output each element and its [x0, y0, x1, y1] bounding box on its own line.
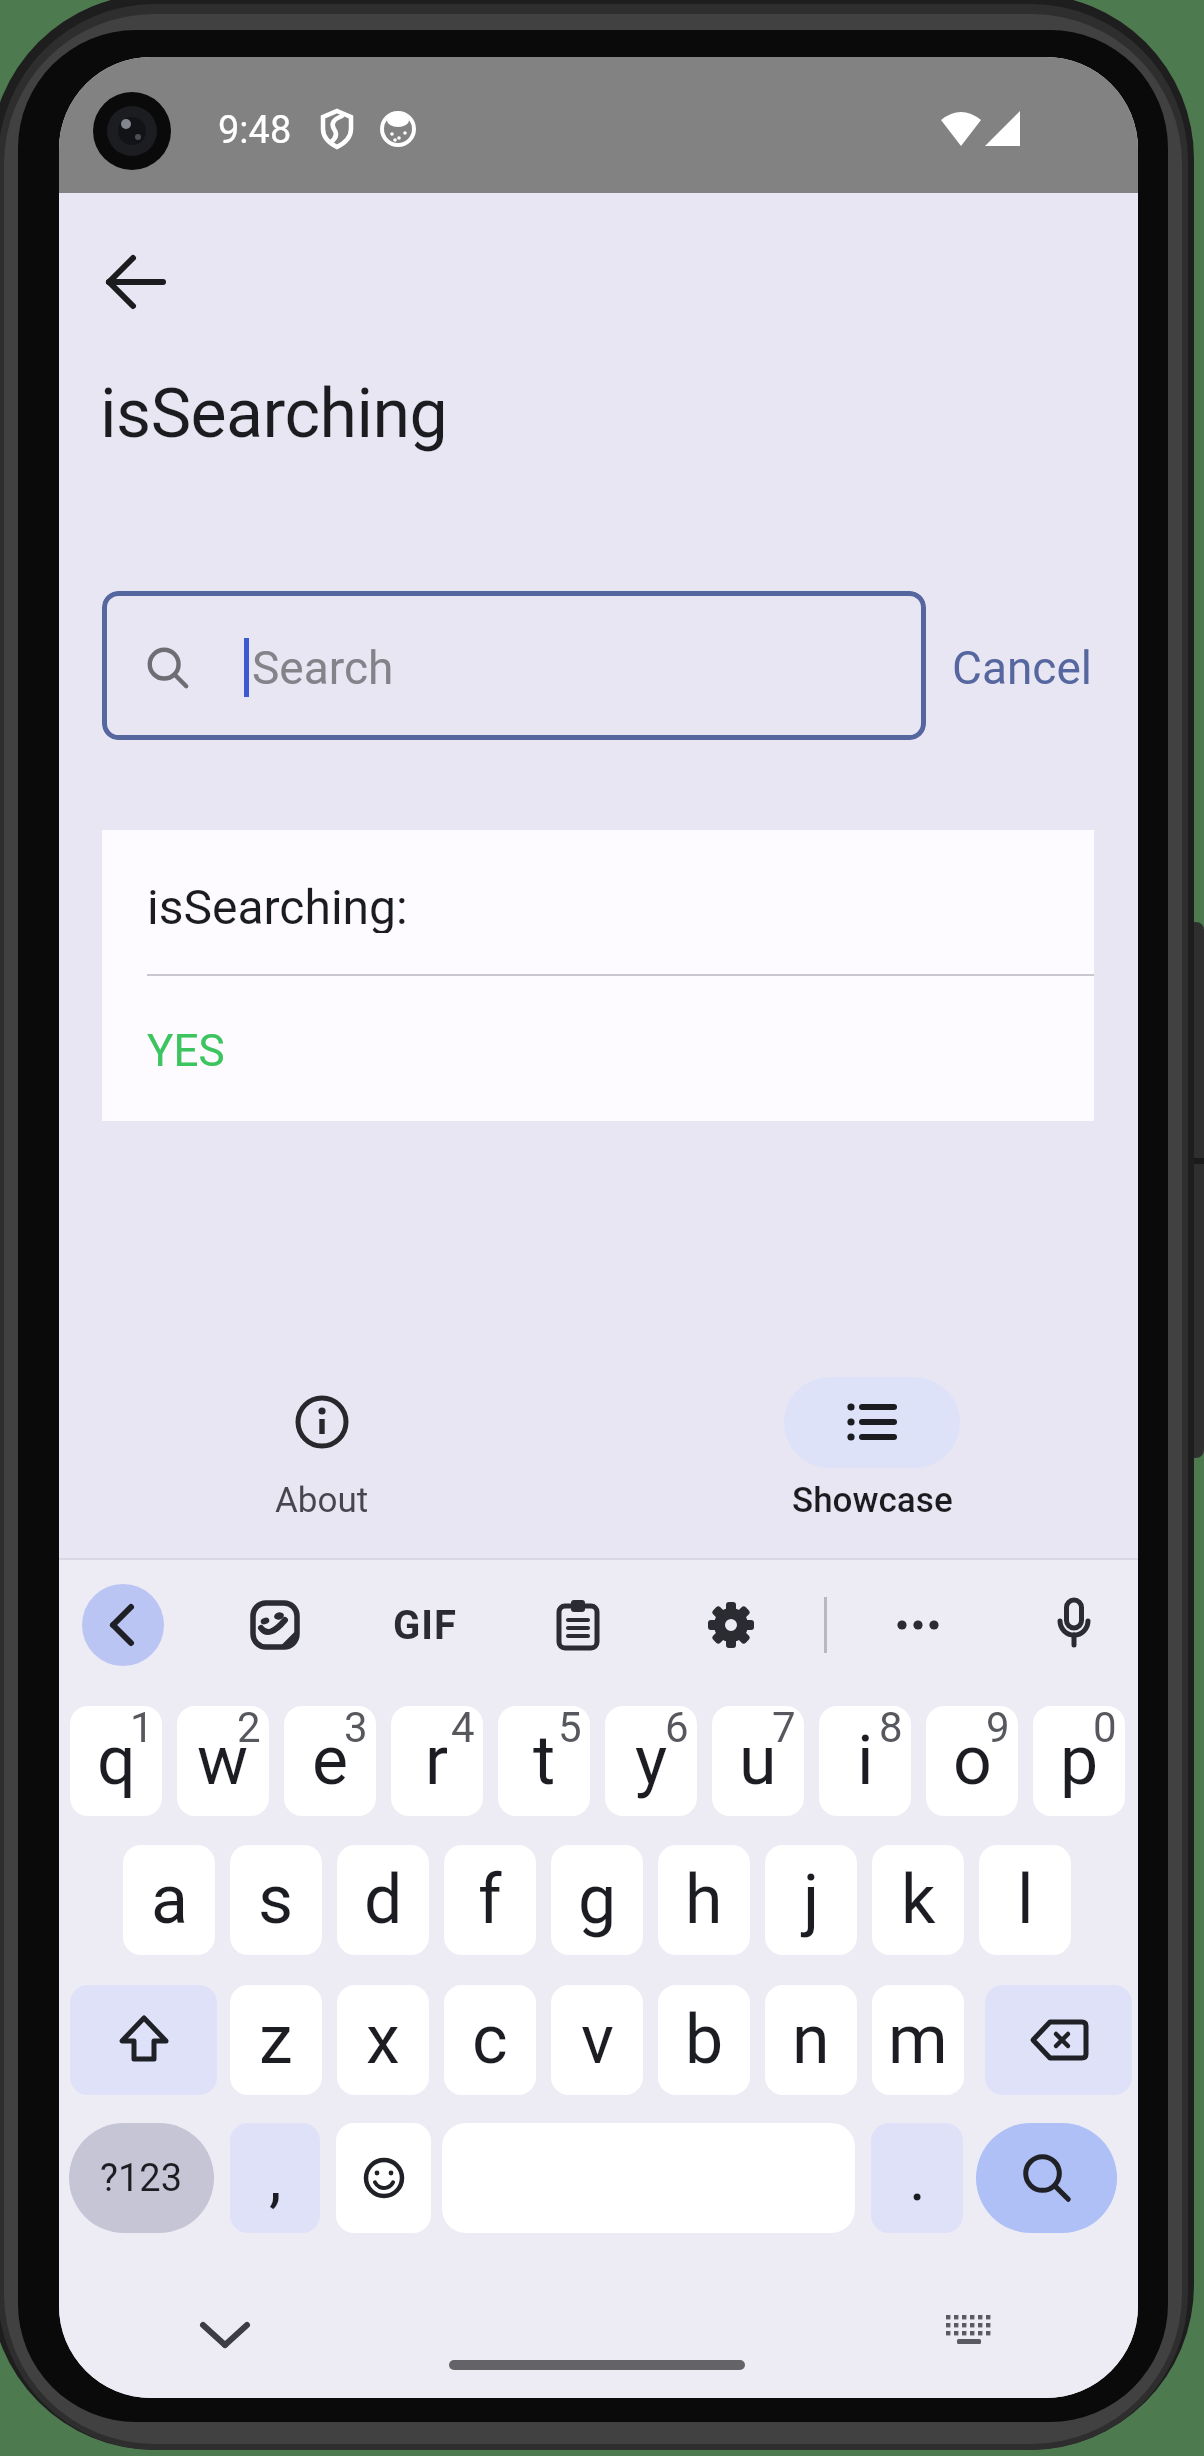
staticText: k	[901, 1860, 936, 1940]
button[interactable]: b	[658, 1985, 750, 2095]
staticText: n	[792, 2000, 830, 2080]
staticText: 4	[451, 1706, 475, 1752]
staticText: j	[803, 1860, 820, 1940]
staticText: 2	[237, 1706, 261, 1752]
staticText: f	[478, 1860, 502, 1940]
staticText: ,	[269, 2141, 282, 2216]
button[interactable]: r	[391, 1706, 483, 1816]
button[interactable]	[222, 1377, 422, 1527]
staticText: l	[1017, 1860, 1034, 1940]
button[interactable]: n	[765, 1985, 857, 2095]
staticText: g	[578, 1860, 617, 1940]
button[interactable]: x	[337, 1985, 429, 2095]
button[interactable]	[336, 2123, 431, 2233]
button[interactable]	[104, 250, 168, 314]
staticText: w	[197, 1721, 249, 1801]
staticText: isSearching	[100, 374, 448, 454]
button[interactable]: i	[819, 1706, 911, 1816]
button[interactable]: c	[444, 1985, 536, 2095]
button[interactable]: a	[123, 1845, 215, 1955]
button[interactable]	[705, 1599, 757, 1651]
staticText: c	[472, 2000, 508, 2080]
button[interactable]: t	[498, 1706, 590, 1816]
button[interactable]: f	[444, 1845, 536, 1955]
staticText: 3	[344, 1706, 368, 1752]
staticText: t	[533, 1721, 556, 1801]
button[interactable]: s	[230, 1845, 322, 1955]
button[interactable]: q	[70, 1706, 162, 1816]
staticText: Showcase	[792, 1480, 953, 1521]
button[interactable]	[250, 1600, 300, 1650]
button[interactable]: d	[337, 1845, 429, 1955]
button[interactable]: g	[551, 1845, 643, 1955]
staticText: 0	[1093, 1706, 1117, 1752]
staticText: i	[857, 1721, 874, 1801]
button[interactable]: .	[871, 2123, 963, 2233]
staticText: ?123	[100, 2156, 183, 2201]
staticText: x	[366, 2000, 400, 2080]
button[interactable]: w	[177, 1706, 269, 1816]
staticText: d	[364, 1860, 403, 1940]
staticText: Search	[252, 641, 394, 695]
button[interactable]: j	[765, 1845, 857, 1955]
button[interactable]	[894, 1615, 942, 1635]
staticText: q	[97, 1721, 136, 1801]
button[interactable]: p	[1033, 1706, 1125, 1816]
button[interactable]: e	[284, 1706, 376, 1816]
staticText: GIF	[393, 1602, 457, 1649]
staticText: 6	[665, 1706, 689, 1752]
button[interactable]: o	[926, 1706, 1018, 1816]
staticText: isSearching:	[147, 879, 408, 933]
button[interactable]: y	[605, 1706, 697, 1816]
button[interactable]	[784, 1377, 960, 1468]
staticText: p	[1060, 1721, 1099, 1801]
button[interactable]: ,	[230, 2123, 320, 2233]
staticText: v	[581, 2000, 614, 2080]
staticText: b	[685, 2000, 724, 2080]
staticText: h	[685, 1860, 723, 1940]
staticText: u	[739, 1721, 777, 1801]
button[interactable]	[102, 591, 926, 740]
staticText: 9:48	[218, 108, 292, 153]
button[interactable]	[70, 1985, 217, 2095]
button[interactable]: l	[979, 1845, 1071, 1955]
staticText: a	[151, 1860, 188, 1940]
button[interactable]: ?123	[69, 2123, 214, 2233]
button[interactable]	[553, 1598, 603, 1652]
staticText: o	[953, 1721, 992, 1801]
button[interactable]	[1048, 1597, 1100, 1653]
staticText: Cancel	[952, 641, 1093, 695]
staticText: 7	[772, 1706, 796, 1752]
button[interactable]	[944, 2313, 996, 2349]
staticText: 5	[558, 1706, 582, 1752]
staticText: .	[909, 2141, 926, 2216]
button[interactable]: u	[712, 1706, 804, 1816]
staticText: About	[275, 1480, 369, 1521]
staticText: s	[258, 1860, 294, 1940]
button[interactable]: h	[658, 1845, 750, 1955]
staticText: 1	[130, 1706, 154, 1752]
button[interactable]: z	[230, 1985, 322, 2095]
staticText: YES	[147, 1025, 225, 1077]
button[interactable]	[976, 2123, 1117, 2233]
button[interactable]	[193, 2311, 257, 2359]
staticText: 8	[879, 1706, 903, 1752]
button[interactable]: k	[872, 1845, 964, 1955]
button[interactable]: v	[551, 1985, 643, 2095]
staticText: y	[635, 1721, 668, 1801]
button[interactable]: GIF	[365, 1600, 485, 1650]
staticText: r	[425, 1721, 449, 1801]
staticText: z	[259, 2000, 293, 2080]
button[interactable]	[985, 1985, 1132, 2095]
button[interactable]: m	[872, 1985, 964, 2095]
staticText: 9	[986, 1706, 1010, 1752]
staticText: m	[888, 2000, 948, 2080]
staticText: e	[312, 1721, 349, 1801]
button[interactable]: Cancel	[939, 630, 1106, 706]
button[interactable]	[82, 1584, 164, 1666]
